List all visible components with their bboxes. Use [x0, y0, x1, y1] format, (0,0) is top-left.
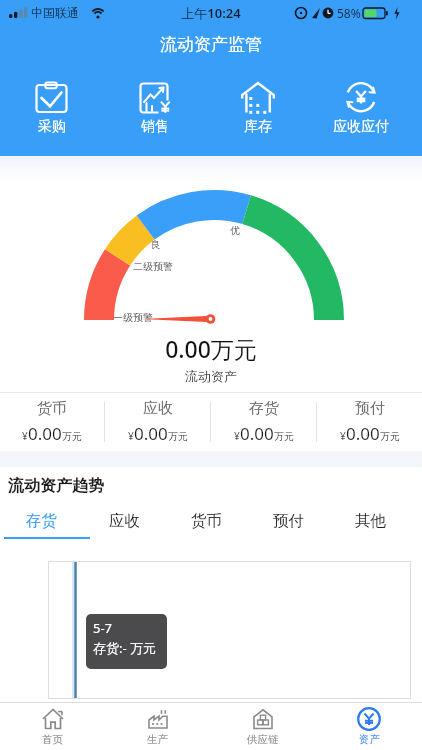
- staticText: 万元: [62, 430, 82, 443]
- staticText: 二级预警: [133, 260, 173, 273]
- staticText: 0.00万元: [0, 333, 422, 364]
- staticText: 万元: [168, 430, 188, 443]
- staticText: 58%: [337, 5, 361, 21]
- button[interactable]: 存货: [0, 504, 83, 537]
- button[interactable]: 库存: [206, 62, 309, 156]
- staticText: 应收应付: [333, 118, 389, 136]
- staticText: 良: [151, 238, 161, 251]
- button[interactable]: 供应链: [210, 703, 316, 750]
- button[interactable]: 生产: [105, 703, 210, 750]
- staticText: 其他: [355, 511, 386, 531]
- staticText: 上午10:24: [0, 4, 422, 22]
- staticText: 5-7: [93, 619, 113, 637]
- staticText: 预付: [355, 399, 385, 418]
- button[interactable]: 采购: [0, 62, 103, 156]
- button[interactable]: 首页: [0, 703, 105, 750]
- staticText: 0.00: [28, 422, 62, 445]
- staticText: 采购: [38, 118, 66, 136]
- staticText: 应收: [109, 511, 140, 531]
- staticText: 流动资产: [0, 368, 422, 384]
- staticText: 0.00: [134, 422, 168, 445]
- button[interactable]: 应收: [105, 399, 210, 445]
- staticText: 货币: [37, 399, 67, 418]
- staticText: 资产: [359, 733, 380, 746]
- staticText: 0.00: [346, 422, 380, 445]
- button[interactable]: 货币: [0, 399, 104, 445]
- staticText: 存货: [26, 511, 57, 531]
- button[interactable]: 其他: [329, 504, 411, 537]
- staticText: 生产: [147, 733, 168, 746]
- button[interactable]: 销售: [103, 62, 206, 156]
- staticText: ¥: [234, 429, 240, 443]
- staticText: 预付: [273, 511, 304, 531]
- staticText: ¥: [22, 429, 28, 443]
- staticText: 存货: [249, 399, 279, 418]
- staticText: 0.00: [240, 422, 274, 445]
- staticText: 应收: [143, 399, 173, 418]
- staticText: 流动资产监管: [160, 34, 262, 55]
- button[interactable]: 资产: [316, 703, 422, 750]
- staticText: 销售: [141, 118, 169, 136]
- staticText: 万元: [380, 430, 400, 443]
- staticText: 库存: [244, 118, 272, 136]
- staticText: 存货:- 万元: [93, 639, 157, 657]
- button[interactable]: 应收: [83, 504, 165, 537]
- staticText: ¥: [340, 429, 346, 443]
- staticText: 一级预警: [113, 311, 153, 324]
- staticText: ¥: [128, 429, 134, 443]
- staticText: 货币: [191, 511, 222, 531]
- button[interactable]: 应收应付: [309, 62, 412, 156]
- staticText: 优: [230, 224, 240, 237]
- staticText: 供应链: [247, 733, 279, 746]
- staticText: 流动资产趋势: [8, 476, 104, 496]
- button[interactable]: 预付: [247, 504, 329, 537]
- button[interactable]: 存货: [211, 399, 316, 445]
- staticText: 中国联通: [31, 5, 79, 20]
- button[interactable]: 货币: [165, 504, 247, 537]
- staticText: 首页: [42, 733, 63, 746]
- button[interactable]: 预付: [317, 399, 422, 445]
- staticText: 万元: [274, 430, 294, 443]
